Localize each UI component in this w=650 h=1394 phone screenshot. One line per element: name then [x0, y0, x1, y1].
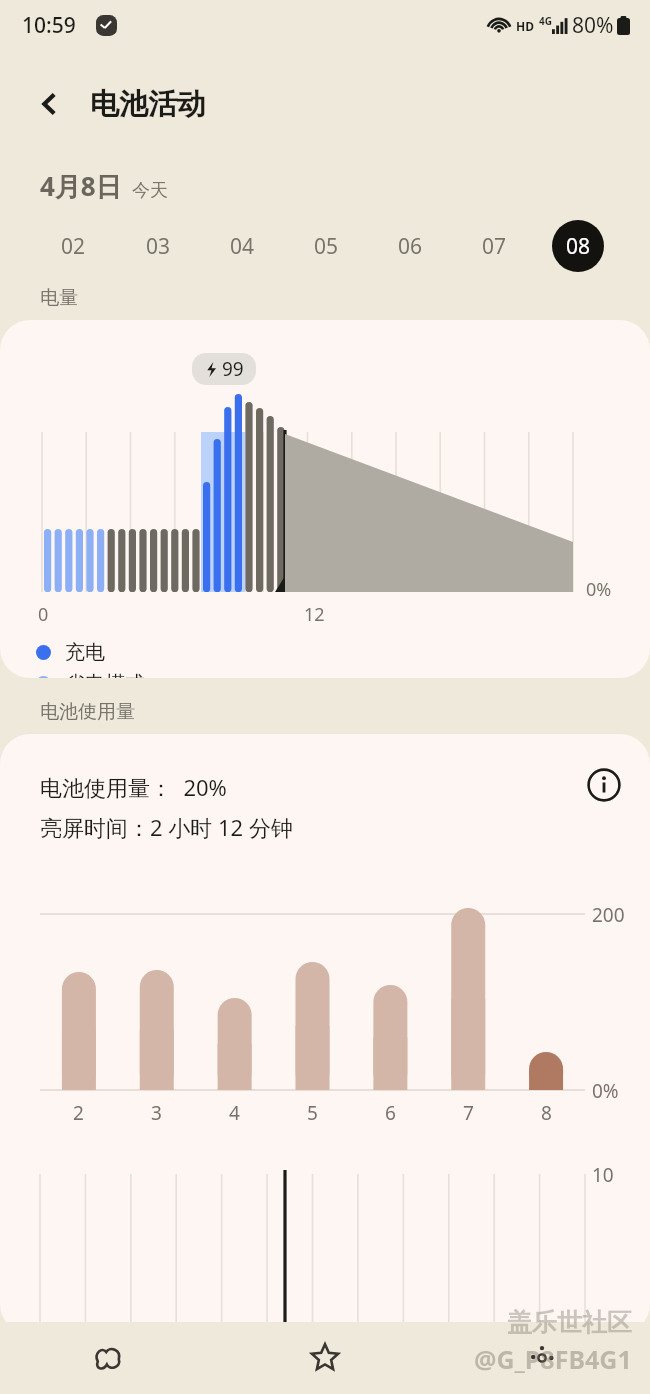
staticText: 电池使用量: [40, 700, 135, 724]
staticText: 0%: [586, 577, 612, 602]
button[interactable]: 电池使用量： 20%: [0, 734, 650, 1334]
staticText: 8: [541, 1100, 552, 1126]
staticText: 0%: [592, 1078, 619, 1104]
staticText: 02: [61, 232, 86, 261]
staticText: 4月8日: [40, 168, 122, 204]
button[interactable]: 05: [284, 218, 368, 274]
button[interactable]: 信息: [583, 764, 625, 806]
button[interactable]: 04: [200, 218, 284, 274]
staticText: 05: [314, 232, 339, 261]
staticText: 10:59: [22, 11, 76, 40]
staticText: 亮屏时间：2 小时 12 分钟: [40, 812, 293, 842]
button[interactable]: 03: [115, 218, 200, 274]
staticText: 03: [146, 232, 171, 261]
staticText: 10: [592, 1162, 614, 1188]
staticText: 省电模式: [65, 671, 145, 678]
staticText: 3: [151, 1100, 162, 1126]
button[interactable]: 02: [30, 218, 115, 274]
button[interactable]: 07: [452, 218, 536, 274]
button[interactable]: 06: [368, 218, 452, 274]
button[interactable]: 99: [0, 320, 650, 678]
staticText: 04: [230, 232, 255, 261]
staticText: 80%: [572, 11, 614, 40]
staticText: 12: [304, 602, 325, 627]
staticText: 电池使用量： 20%: [40, 772, 227, 802]
button[interactable]: 主页: [216, 1322, 433, 1394]
staticText: @G_P8FB4G1: [474, 1342, 632, 1376]
button[interactable]: 返回: [28, 82, 72, 126]
staticText: 电池活动: [90, 86, 206, 123]
staticText: HD: [516, 18, 534, 34]
button[interactable]: 08: [536, 218, 620, 274]
staticText: 08: [566, 232, 591, 261]
staticText: 充电: [65, 640, 105, 665]
staticText: 99: [222, 356, 244, 382]
staticText: 电量: [40, 286, 78, 310]
button[interactable]: 最近: [0, 1322, 216, 1394]
staticText: 0: [38, 602, 49, 627]
staticText: 7: [463, 1100, 474, 1126]
staticText: 6: [385, 1100, 396, 1126]
staticText: 200: [592, 902, 625, 928]
staticText: 06: [398, 232, 423, 261]
staticText: 盖乐世社区: [507, 1307, 632, 1338]
staticText: 4G: [539, 14, 552, 28]
button[interactable]: 更多: [433, 1322, 650, 1394]
staticText: 今天: [132, 179, 168, 202]
staticText: 4: [229, 1100, 240, 1126]
staticText: 07: [482, 232, 507, 261]
staticText: 2: [73, 1100, 84, 1126]
staticText: 5: [307, 1100, 318, 1126]
